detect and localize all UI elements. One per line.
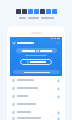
button[interactable]: More options (56, 41, 60, 45)
button[interactable]: Download (10, 76, 62, 84)
button[interactable]: Download (10, 108, 62, 116)
button[interactable] (13, 70, 60, 74)
button[interactable]: Download (10, 84, 62, 92)
button[interactable]: Download (57, 87, 60, 90)
button[interactable]: Download (57, 111, 60, 114)
button[interactable]: Download (10, 92, 62, 100)
button[interactable] (10, 100, 62, 108)
button[interactable]: Download (57, 79, 60, 82)
button[interactable]: Download (57, 117, 60, 120)
button[interactable] (16, 48, 57, 53)
button[interactable]: Download (10, 116, 62, 120)
button[interactable]: Download (57, 95, 60, 98)
button[interactable] (20, 59, 52, 65)
